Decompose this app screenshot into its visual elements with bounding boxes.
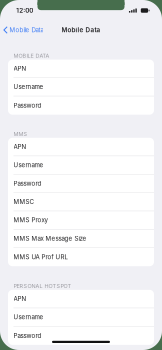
staticText: Username	[13, 83, 43, 91]
button[interactable]: Password	[8, 326, 154, 345]
button[interactable]: Username	[8, 308, 154, 327]
staticText: APN	[13, 143, 26, 150]
staticText: Username	[13, 313, 43, 321]
button[interactable]: MMSC	[8, 193, 154, 211]
staticText: Password	[13, 102, 41, 109]
staticText: Username	[13, 161, 43, 169]
staticText: MOBILE DATA	[13, 52, 49, 59]
button[interactable]: Mobile Data	[0, 22, 43, 38]
button[interactable]: Username	[8, 78, 154, 96]
button[interactable]: MMS UA Prof URL	[8, 248, 154, 266]
staticText: Password	[13, 332, 41, 339]
button[interactable]: MMS Proxy	[8, 211, 154, 230]
staticText: APN	[13, 65, 26, 72]
staticText: 12:00	[16, 7, 33, 14]
staticText: MMS UA Prof URL	[13, 253, 67, 261]
staticText: APN	[13, 295, 26, 302]
button[interactable]: MMS Max Message Size	[8, 229, 154, 248]
staticText: PERSONAL HOTSPOT	[13, 283, 71, 289]
staticText: MMS	[13, 131, 27, 137]
staticText: Mobile Data	[9, 26, 43, 34]
button[interactable]: APN	[8, 290, 154, 308]
staticText: MMS Max Message Size	[13, 235, 86, 242]
staticText: Mobile Data	[61, 26, 100, 34]
button[interactable]: Password	[8, 96, 154, 115]
button[interactable]: Password	[8, 174, 154, 193]
button[interactable]: Username	[8, 156, 154, 174]
staticText: MMS Proxy	[13, 216, 47, 224]
button[interactable]: APN	[8, 60, 154, 78]
button[interactable]: APN	[8, 138, 154, 156]
staticText: Password	[13, 180, 41, 187]
staticText: MMSC	[13, 198, 33, 205]
